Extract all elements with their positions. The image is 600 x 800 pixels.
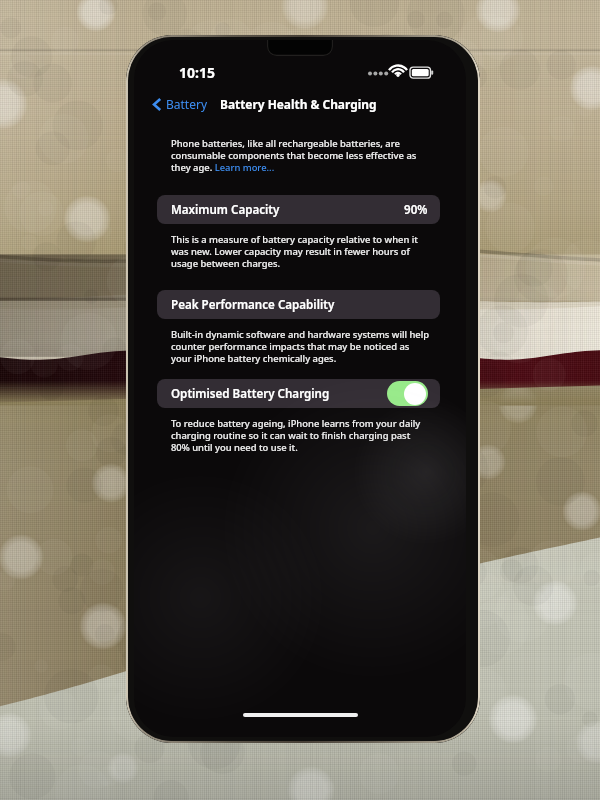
staticText: This is a measure of battery capacity re…	[171, 233, 418, 270]
staticText: Maximum Capacity	[171, 202, 280, 218]
staticText: Peak Performance Capability	[171, 297, 335, 313]
button[interactable]: Battery	[150, 93, 210, 115]
button[interactable]: Peak Performance Capability	[157, 290, 440, 319]
staticText: Battery	[166, 96, 208, 112]
button[interactable]: Maximum Capacity	[157, 195, 440, 224]
staticText: Phone batteries, like all rechargeable b…	[171, 137, 417, 174]
staticText: Built-in dynamic software and hardware s…	[171, 328, 430, 365]
staticText: Optimised Battery Charging	[171, 386, 330, 402]
staticText: 10:15	[179, 63, 215, 82]
staticText: To reduce battery ageing, iPhone learns …	[171, 417, 421, 454]
staticText: Battery Health & Charging	[220, 96, 377, 112]
button[interactable]: Optimised Battery Charging	[157, 379, 440, 408]
staticText: 90%	[404, 202, 428, 218]
button[interactable]: Optimised Battery Charging toggle	[387, 381, 428, 406]
